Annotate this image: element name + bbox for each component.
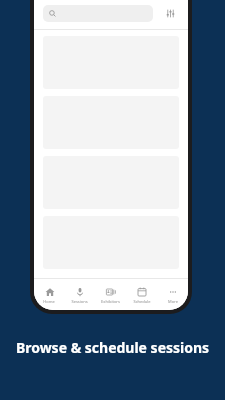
staticText: Browse & schedule sessions bbox=[0, 338, 225, 357]
staticText: Exhibitors bbox=[101, 299, 120, 304]
staticText: More bbox=[168, 299, 178, 304]
button[interactable]: More bbox=[157, 279, 188, 310]
button[interactable]: Sessions bbox=[64, 279, 95, 310]
button[interactable]: Home bbox=[34, 279, 64, 310]
button[interactable]: Exhibitors bbox=[95, 279, 126, 310]
button[interactable] bbox=[43, 5, 153, 22]
button[interactable]: Filter bbox=[161, 4, 179, 22]
staticText: Home bbox=[43, 299, 55, 304]
staticText: Sessions bbox=[71, 299, 88, 304]
staticText: Schedule bbox=[133, 299, 151, 304]
button[interactable]: Schedule bbox=[126, 279, 157, 310]
